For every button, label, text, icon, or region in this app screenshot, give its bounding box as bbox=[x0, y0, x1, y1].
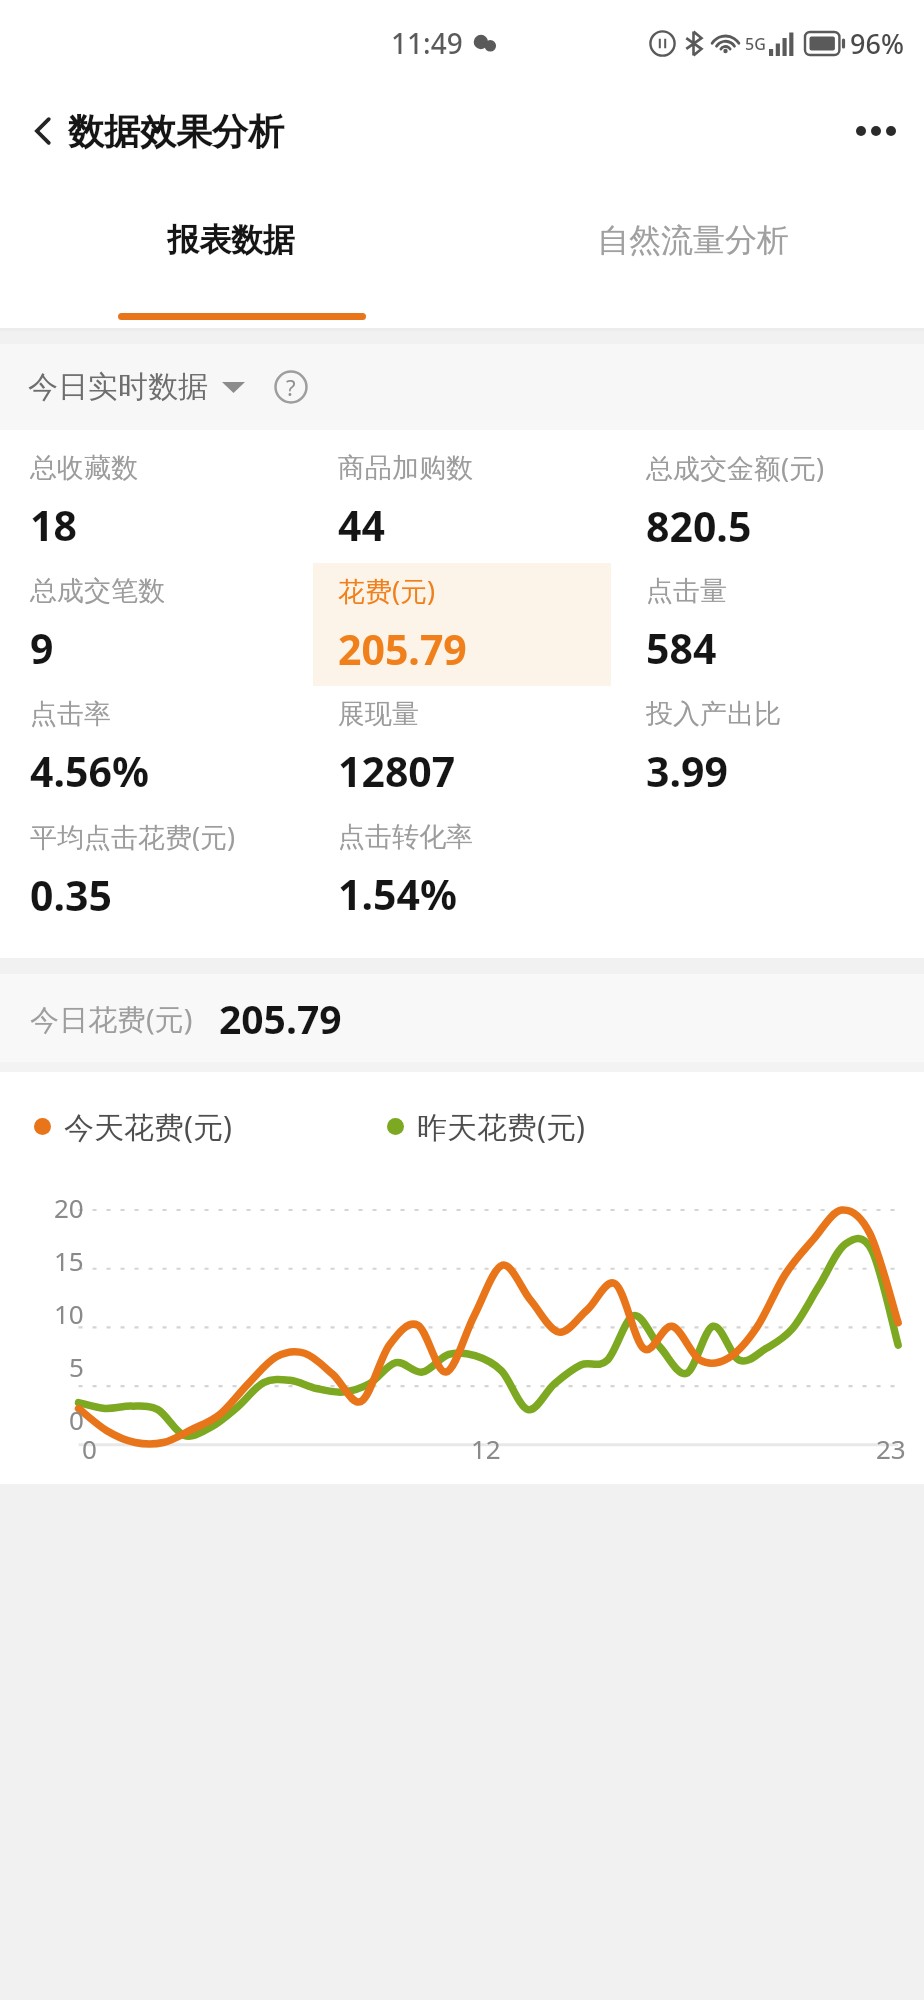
staticText: 今日花费(元) bbox=[30, 999, 193, 1039]
staticText: 自然流量分析 bbox=[597, 220, 789, 260]
button[interactable]: More options bbox=[844, 99, 908, 163]
staticText: 点击率 bbox=[30, 697, 111, 731]
staticText: 商品加购数 bbox=[338, 451, 473, 485]
staticText: 584 bbox=[646, 620, 717, 676]
staticText: 投入产出比 bbox=[646, 697, 781, 731]
staticText: 44 bbox=[338, 497, 385, 553]
staticText: 5G bbox=[745, 33, 766, 55]
staticText: 平均点击花费(元) bbox=[30, 818, 236, 855]
staticText: 20 bbox=[54, 1190, 84, 1225]
staticText: 11:49 bbox=[391, 24, 463, 62]
staticText: 10 bbox=[54, 1296, 84, 1331]
staticText: 昨天花费(元) bbox=[417, 1106, 585, 1147]
staticText: 1.54% bbox=[338, 866, 457, 922]
staticText: 23 bbox=[876, 1431, 906, 1466]
staticText: 总收藏数 bbox=[30, 451, 138, 485]
staticText: 0.35 bbox=[30, 867, 112, 923]
staticText: 18 bbox=[30, 497, 77, 553]
button[interactable]: 报表数据 bbox=[0, 176, 462, 328]
staticText: 820.5 bbox=[646, 498, 752, 554]
staticText: 205.79 bbox=[338, 621, 467, 677]
button[interactable]: 商品加购数 bbox=[308, 440, 616, 563]
staticText: 点击转化率 bbox=[338, 820, 473, 854]
staticText: ? bbox=[286, 372, 296, 402]
button[interactable]: 点击量 bbox=[616, 563, 924, 686]
staticText: 点击量 bbox=[646, 574, 727, 608]
staticText: 数据效果分析 bbox=[68, 109, 284, 154]
button[interactable]: 平均点击花费(元) bbox=[0, 809, 308, 932]
button[interactable]: 点击转化率 bbox=[308, 809, 616, 932]
staticText: 15 bbox=[54, 1243, 84, 1278]
button[interactable]: 总收藏数 bbox=[0, 440, 308, 563]
button[interactable]: 今日实时数据 bbox=[28, 368, 245, 406]
staticText: 9 bbox=[30, 620, 54, 676]
staticText: 96% bbox=[850, 25, 904, 62]
staticText: 205.79 bbox=[219, 992, 342, 1045]
staticText: 0 bbox=[82, 1431, 97, 1466]
staticText: 总成交笔数 bbox=[30, 574, 165, 608]
staticText: 今天花费(元) bbox=[64, 1106, 232, 1147]
staticText: 报表数据 bbox=[167, 220, 295, 260]
staticText: 总成交金额(元) bbox=[646, 449, 825, 486]
button[interactable]: Help bbox=[269, 365, 313, 409]
button[interactable]: Back bbox=[14, 102, 72, 160]
button[interactable]: 总成交笔数 bbox=[0, 563, 308, 686]
staticText: 花费(元) bbox=[338, 572, 436, 609]
button[interactable]: 展现量 bbox=[308, 686, 616, 809]
button[interactable]: 花费(元) bbox=[313, 563, 611, 686]
staticText: 3.99 bbox=[646, 743, 728, 799]
staticText: 12 bbox=[471, 1431, 501, 1466]
staticText: 5 bbox=[69, 1349, 84, 1384]
staticText: 0 bbox=[69, 1402, 84, 1437]
button[interactable]: 点击率 bbox=[0, 686, 308, 809]
staticText: 展现量 bbox=[338, 697, 419, 731]
staticText: 12807 bbox=[338, 743, 456, 799]
staticText: 今日实时数据 bbox=[28, 368, 208, 406]
button[interactable]: 投入产出比 bbox=[616, 686, 924, 809]
staticText: 4.56% bbox=[30, 743, 149, 799]
button[interactable]: 自然流量分析 bbox=[462, 176, 924, 328]
button[interactable]: 总成交金额(元) bbox=[616, 440, 924, 563]
